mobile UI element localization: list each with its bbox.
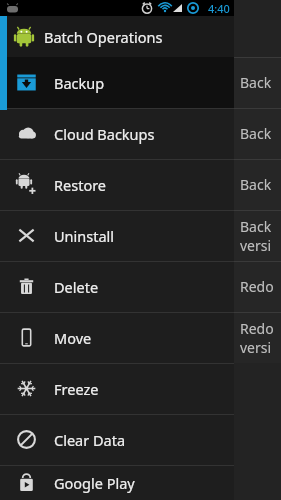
staticText: Redo [240, 277, 274, 296]
other: App icon [13, 26, 35, 48]
button[interactable]: Back [0, 159, 281, 210]
staticText: Backup [54, 73, 105, 93]
button[interactable]: Backup [0, 57, 234, 108]
button[interactable]: Restore [0, 159, 234, 210]
staticText: Cloud Backups [54, 124, 155, 144]
button[interactable]: Redo [0, 261, 281, 312]
button[interactable]: Clear Data [0, 414, 234, 465]
staticText: Back [240, 175, 272, 194]
staticText: Google Play [54, 473, 135, 493]
staticText: Restore [54, 175, 107, 195]
button[interactable]: Delete [0, 261, 234, 312]
button[interactable]: Back [0, 108, 281, 159]
button[interactable]: Freeze [0, 363, 234, 414]
staticText: 4:40 [208, 1, 230, 16]
button[interactable]: Cloud Backups [0, 108, 234, 159]
staticText: Freeze [54, 379, 99, 399]
button[interactable]: Redo [0, 312, 281, 363]
staticText: Clear Data [54, 430, 126, 450]
staticText: Move [54, 328, 92, 348]
staticText: versi [240, 338, 272, 357]
staticText: Batch Operations [44, 27, 163, 47]
staticText: Redo [240, 319, 274, 338]
staticText: Back [240, 217, 272, 236]
button[interactable]: Uninstall [0, 210, 234, 261]
staticText: Back [240, 124, 272, 143]
button[interactable]: Move [0, 312, 234, 363]
button[interactable]: Back [0, 57, 281, 108]
button[interactable]: Google Play [0, 465, 234, 500]
staticText: Delete [54, 277, 99, 297]
button[interactable]: Back [0, 210, 281, 261]
staticText: Back [240, 73, 272, 92]
staticText: Uninstall [54, 226, 115, 246]
staticText: versi [240, 236, 272, 255]
button[interactable]: App icon [0, 16, 234, 57]
